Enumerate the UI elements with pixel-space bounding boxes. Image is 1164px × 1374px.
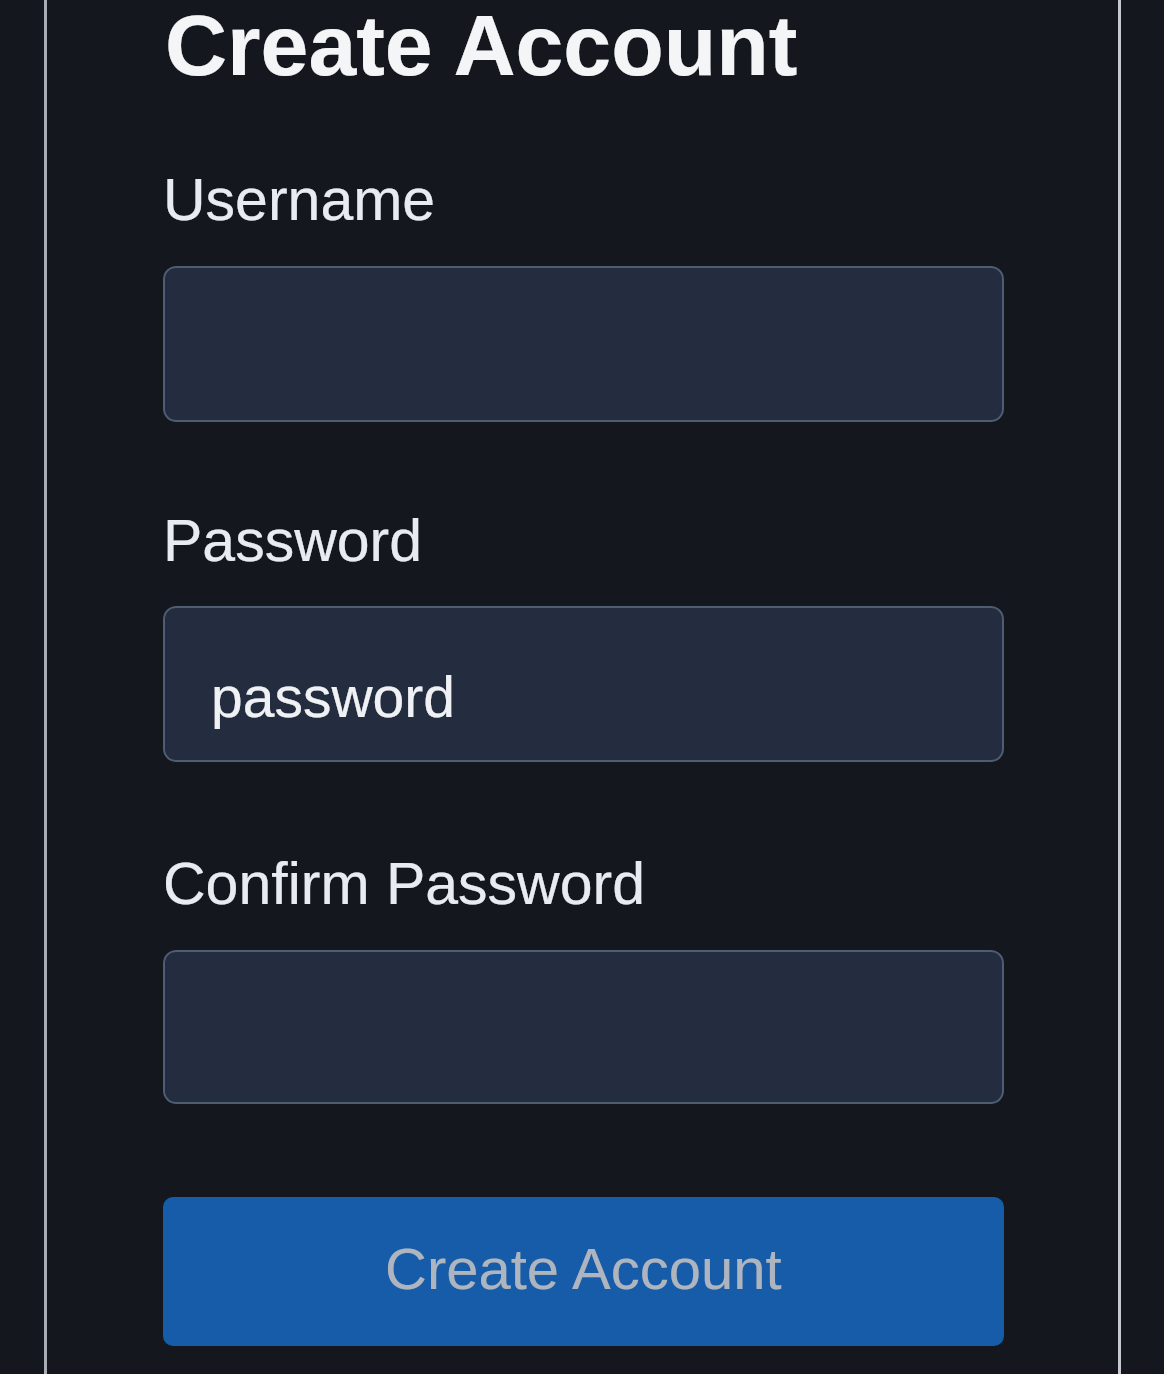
staticText: Create Account <box>165 0 798 93</box>
button[interactable]: password <box>163 606 1004 762</box>
button[interactable] <box>163 950 1004 1104</box>
staticText: Create Account <box>385 1236 782 1301</box>
button[interactable]: Create Account <box>163 1197 1004 1346</box>
staticText: Password <box>163 508 423 574</box>
staticText: Username <box>163 167 436 233</box>
button[interactable] <box>163 266 1004 422</box>
staticText: Confirm Password <box>163 851 645 917</box>
staticText: password <box>211 665 455 729</box>
